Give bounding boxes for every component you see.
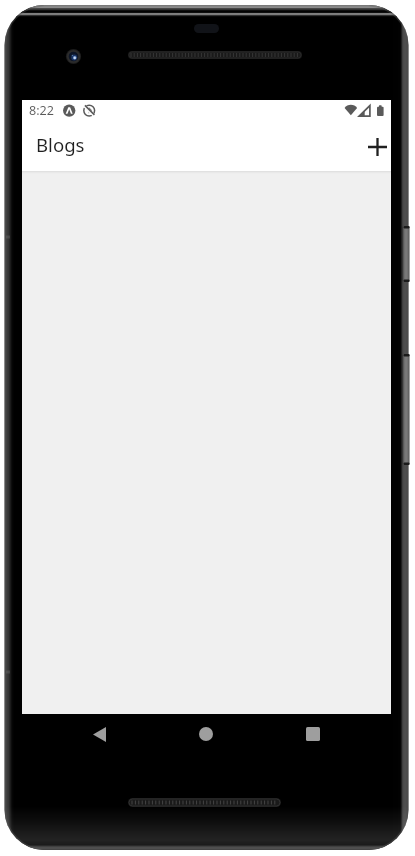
staticText: 8:22	[29, 102, 54, 119]
button[interactable]: Add blog	[355, 125, 399, 169]
staticText: Blogs	[36, 132, 85, 157]
button[interactable]: Home	[184, 712, 228, 756]
button[interactable]: Recent apps	[291, 712, 335, 756]
button[interactable]: Back	[77, 712, 121, 756]
